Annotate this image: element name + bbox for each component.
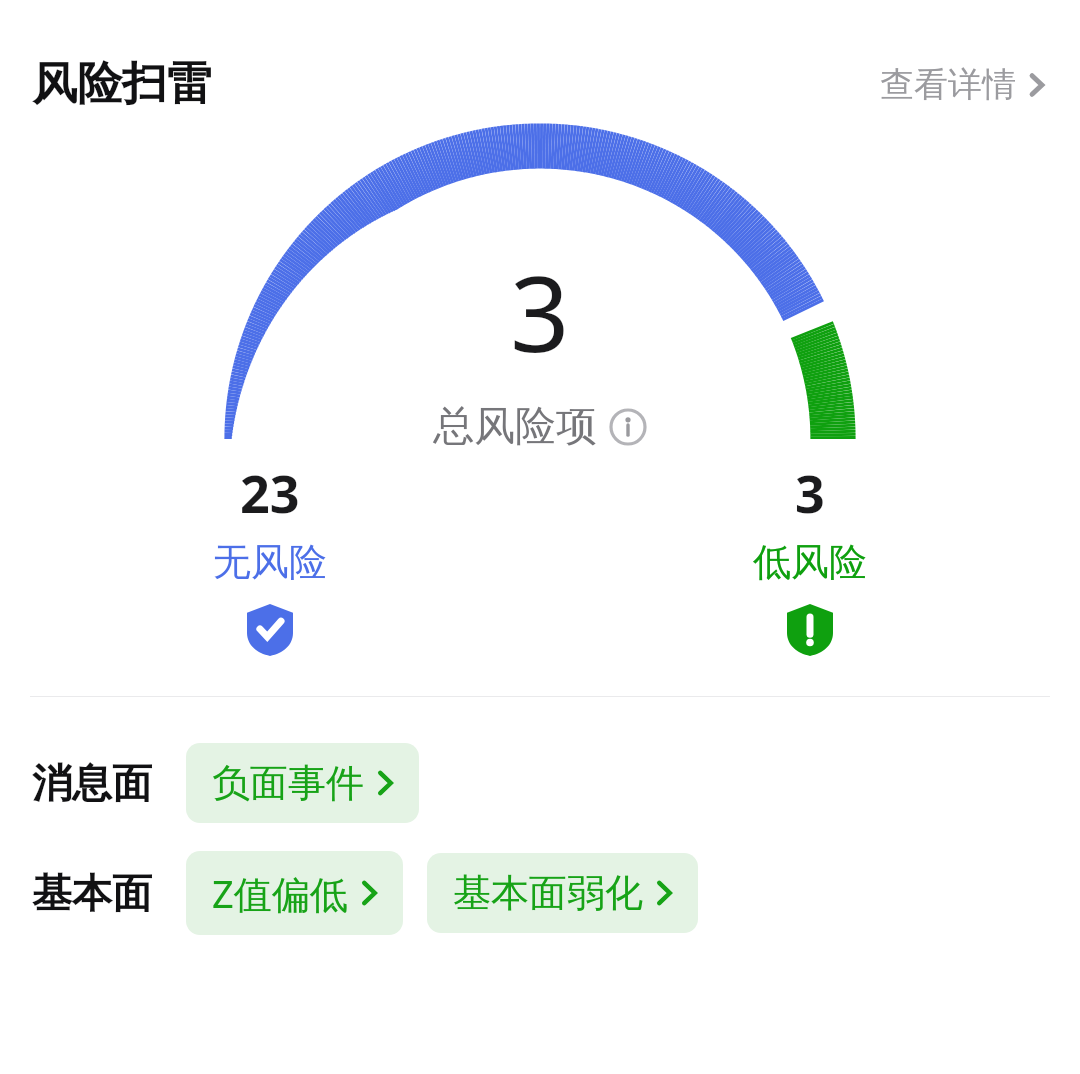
staticText: 消息面	[32, 758, 152, 808]
staticText: 低风险	[753, 538, 867, 586]
staticText: 基本面	[32, 868, 152, 918]
staticText: 负面事件	[212, 759, 364, 807]
button[interactable]: Z值偏低	[186, 851, 403, 935]
staticText: 总风险项	[433, 401, 597, 453]
button[interactable]: 负面事件	[186, 743, 419, 823]
button[interactable]: 基本面弱化	[427, 853, 698, 933]
staticText: 3	[510, 241, 570, 383]
staticText: 23	[240, 457, 300, 528]
staticText: 3	[795, 457, 825, 528]
staticText: 风险扫雷	[32, 56, 212, 113]
staticText: 基本面弱化	[453, 869, 643, 917]
button[interactable]: 查看详情	[876, 57, 1048, 112]
staticText: 查看详情	[880, 63, 1016, 106]
button[interactable]: 3	[540, 453, 1080, 660]
staticText: 无风险	[213, 538, 327, 586]
button[interactable]: 说明	[609, 408, 647, 446]
button[interactable]: 23	[0, 453, 540, 660]
staticText: Z值偏低	[212, 867, 348, 919]
